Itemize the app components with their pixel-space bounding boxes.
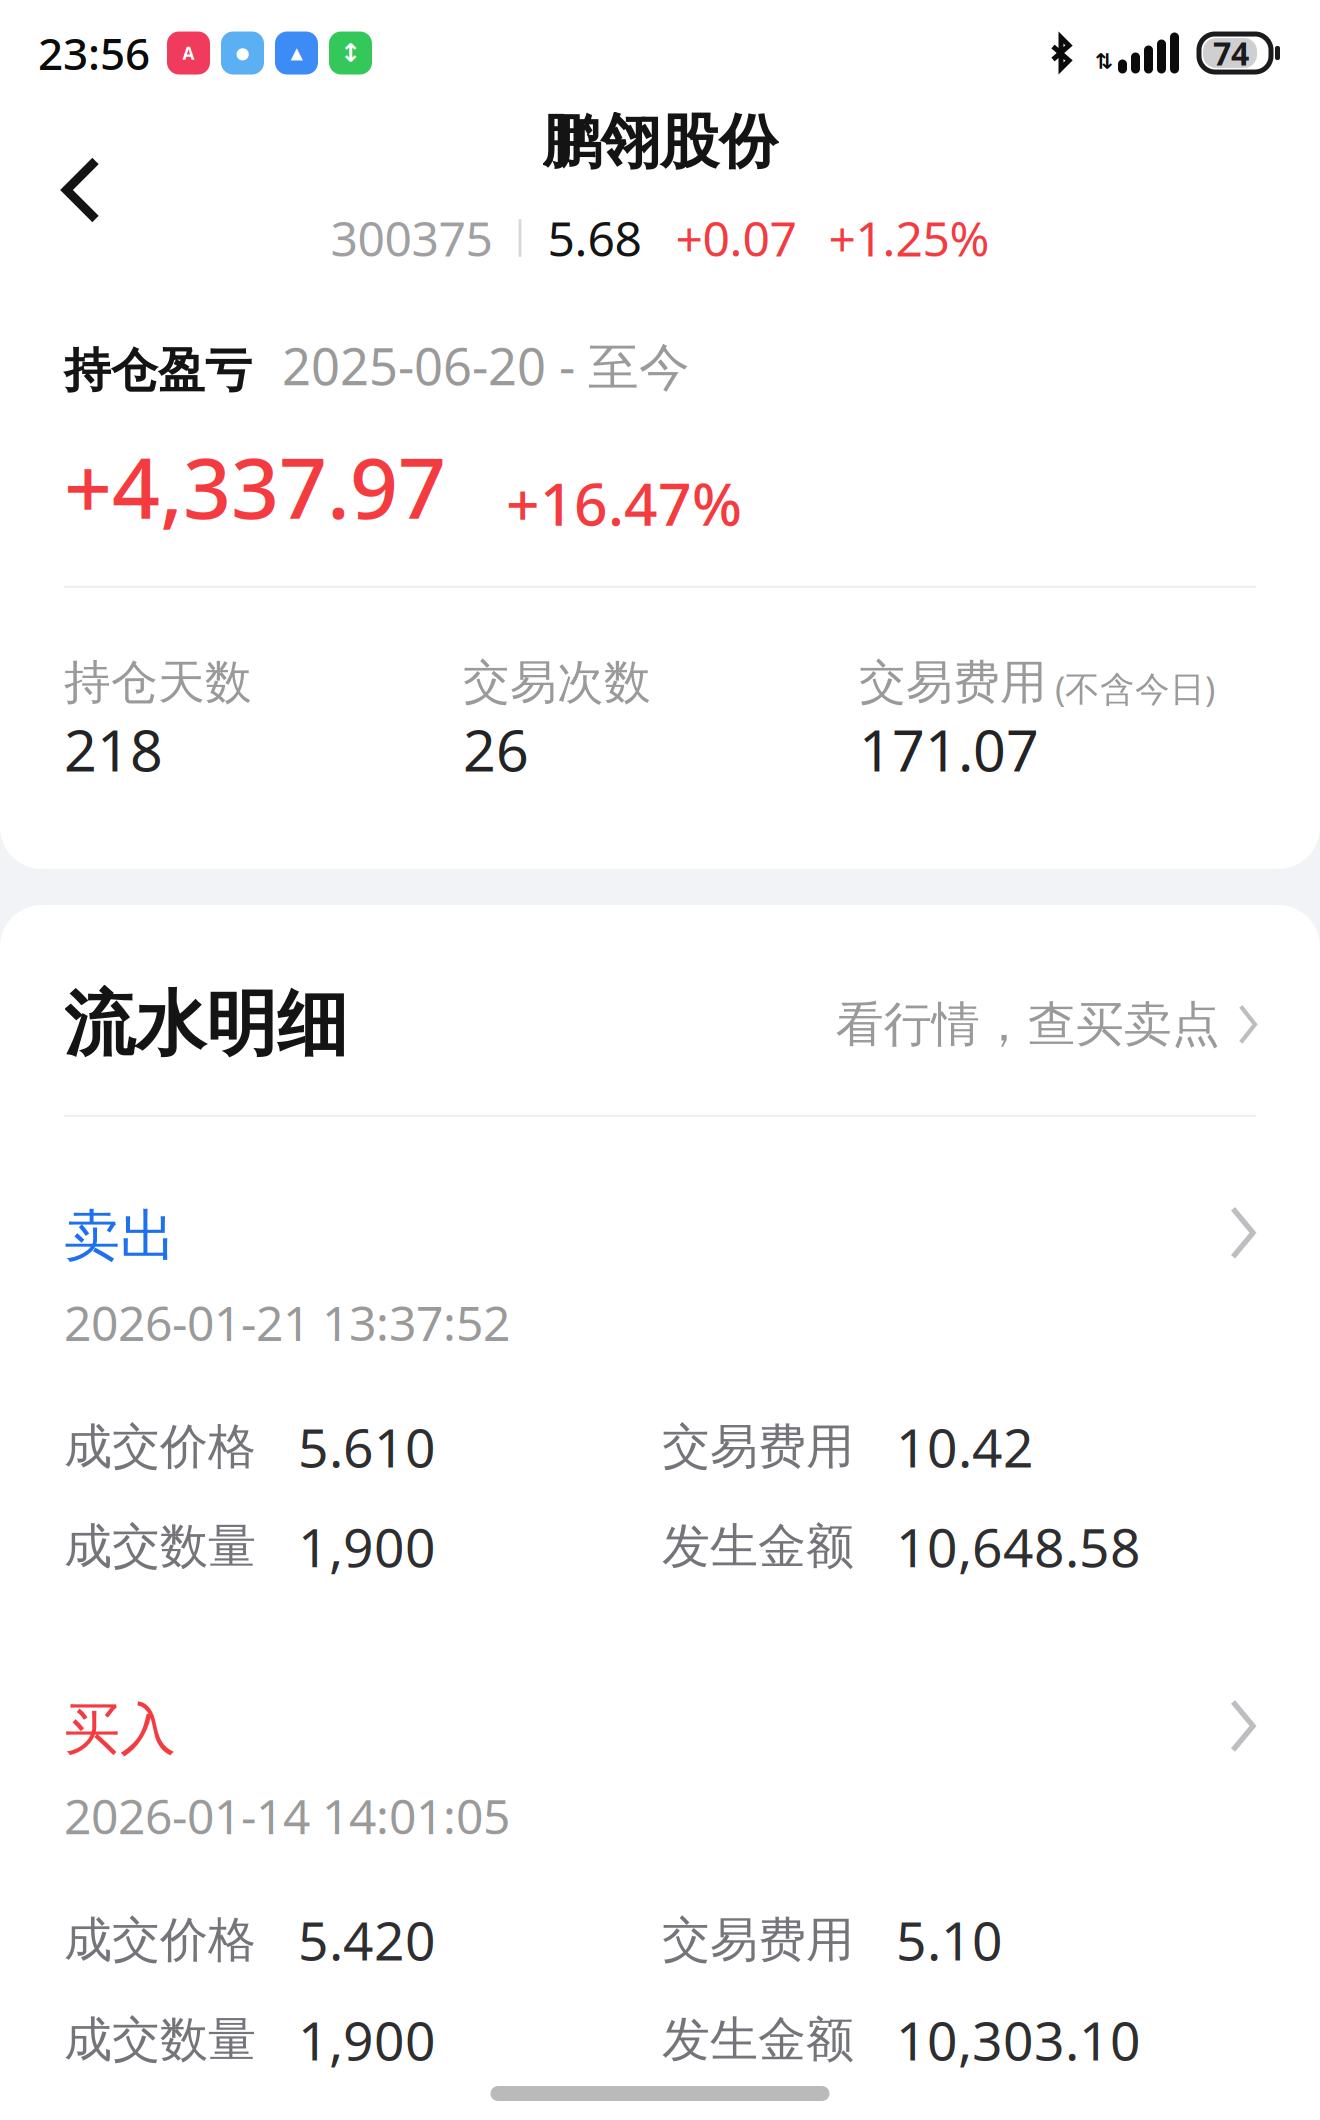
- staticText: 10.42: [896, 1411, 1034, 1482]
- staticText: ↕: [340, 39, 361, 67]
- staticText: 成交价格: [64, 1910, 256, 1969]
- staticText: +1.25%: [828, 206, 989, 270]
- staticText: 2025-06-20 - 至今: [282, 332, 690, 399]
- staticText: 成交价格: [64, 1417, 256, 1476]
- staticText: 成交数量: [64, 1517, 256, 1576]
- button[interactable]: Back: [19, 128, 143, 252]
- staticText: ●: [235, 44, 249, 62]
- button[interactable]: 买入: [64, 1695, 1256, 1847]
- button[interactable]: 流水明细: [64, 981, 1256, 1068]
- staticText: ▲: [290, 44, 302, 62]
- staticText: 交易次数: [463, 654, 651, 711]
- staticText: 74: [1213, 32, 1249, 74]
- staticText: 流水明细: [64, 981, 348, 1068]
- staticText: 交易费用: [662, 1417, 854, 1476]
- staticText: 5.68: [547, 206, 641, 270]
- staticText: 买入: [64, 1695, 176, 1764]
- staticText: 2026-01-14 14:01:05: [64, 1784, 510, 1847]
- staticText: 交易费用: [662, 1910, 854, 1969]
- staticText: 1,900: [298, 2004, 436, 2075]
- staticText: 2026-01-21 13:37:52: [64, 1291, 510, 1354]
- staticText: (不含今日): [1055, 665, 1215, 711]
- staticText: 5.420: [298, 1904, 436, 1975]
- staticText: 10,303.10: [896, 2004, 1141, 2075]
- staticText: 10,648.58: [896, 1511, 1141, 1582]
- staticText: 171.07: [859, 711, 1039, 787]
- button[interactable]: 卖出: [64, 1202, 1256, 1354]
- staticText: +0.07: [675, 206, 796, 270]
- staticText: 发生金额: [662, 1517, 854, 1576]
- staticText: +16.47%: [506, 464, 742, 542]
- staticText: 1,900: [298, 1511, 436, 1582]
- staticText: 发生金额: [662, 2010, 854, 2069]
- staticText: 交易费用: [859, 654, 1047, 711]
- staticText: 218: [64, 711, 163, 787]
- staticText: 300375: [330, 206, 492, 270]
- staticText: 持仓天数: [64, 654, 252, 711]
- staticText: A: [182, 41, 194, 64]
- staticText: 卖出: [64, 1202, 176, 1271]
- staticText: 23:56: [38, 24, 150, 82]
- staticText: 5.610: [298, 1411, 436, 1482]
- staticText: 鹏翎股份: [542, 106, 778, 178]
- staticText: 26: [463, 711, 529, 787]
- staticText: 成交数量: [64, 2010, 256, 2069]
- staticText: 持仓盈亏: [64, 342, 252, 399]
- staticText: 5.10: [896, 1904, 1003, 1975]
- staticText: 看行情，查买卖点: [836, 995, 1220, 1054]
- staticText: ⇅: [1095, 49, 1113, 73]
- staticText: +4,337.97: [64, 430, 446, 542]
